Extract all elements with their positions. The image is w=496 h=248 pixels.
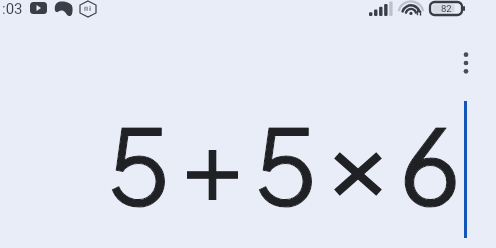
staticText: 5 [254, 98, 319, 229]
staticText: 6 [399, 98, 462, 229]
button[interactable]: More options [452, 43, 480, 83]
staticText: 5 [254, 98, 319, 229]
staticText: :03 [2, 0, 23, 18]
staticText: 82 [441, 3, 452, 14]
staticText: 5 [107, 98, 172, 229]
staticText: 5 [107, 98, 172, 229]
button[interactable]: 5 [0, 84, 496, 248]
staticText: 6 [399, 98, 462, 229]
